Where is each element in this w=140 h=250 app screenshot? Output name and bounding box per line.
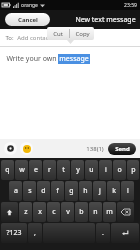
staticText bbox=[68, 228, 70, 238]
staticText: z bbox=[24, 207, 28, 217]
button[interactable]: Cancel bbox=[5, 13, 50, 26]
staticText: e bbox=[34, 165, 38, 175]
button[interactable]: t bbox=[57, 160, 70, 180]
staticText: Write your own bbox=[5, 54, 58, 64]
staticText: n bbox=[93, 207, 98, 217]
button[interactable]: ?123 bbox=[1, 223, 27, 243]
button[interactable]: j bbox=[93, 181, 106, 201]
staticText: k bbox=[112, 186, 116, 196]
button[interactable]: l bbox=[121, 181, 134, 201]
button[interactable]: v bbox=[61, 202, 74, 222]
staticText: c bbox=[52, 207, 56, 217]
button[interactable]: Backspace bbox=[117, 202, 134, 222]
button[interactable]: u bbox=[85, 160, 98, 180]
staticText: w bbox=[19, 165, 25, 175]
button[interactable]: . bbox=[96, 223, 110, 243]
staticText: o bbox=[117, 165, 122, 175]
button[interactable]: s bbox=[23, 181, 36, 201]
button[interactable]: h bbox=[79, 181, 92, 201]
button[interactable]: , bbox=[28, 223, 42, 243]
staticText: orange bbox=[21, 2, 38, 9]
button[interactable]: q bbox=[1, 160, 14, 180]
staticText: h bbox=[83, 186, 88, 196]
staticText: r bbox=[48, 165, 51, 175]
button[interactable] bbox=[43, 223, 95, 243]
button[interactable]: Enter bbox=[111, 223, 139, 243]
staticText: message bbox=[59, 54, 89, 64]
staticText: p bbox=[131, 165, 136, 175]
button[interactable]: Shift bbox=[1, 202, 18, 222]
staticText: . bbox=[102, 228, 104, 238]
button[interactable]: p bbox=[127, 160, 139, 180]
staticText: v bbox=[66, 207, 70, 217]
staticText: b bbox=[79, 207, 84, 217]
staticText: Copy bbox=[75, 30, 90, 38]
button[interactable]: k bbox=[107, 181, 120, 201]
button[interactable]: x bbox=[33, 202, 46, 222]
button[interactable]: i bbox=[99, 160, 112, 180]
staticText: To: bbox=[5, 34, 14, 42]
staticText: ?123 bbox=[6, 228, 22, 238]
button[interactable]: c bbox=[47, 202, 60, 222]
button[interactable]: a bbox=[9, 181, 22, 201]
button[interactable]: Cut bbox=[47, 27, 69, 40]
staticText: j bbox=[99, 186, 101, 196]
staticText: a bbox=[14, 186, 18, 196]
staticText: Add contact bbox=[17, 34, 51, 42]
staticText: g bbox=[69, 186, 74, 196]
button[interactable]: m bbox=[103, 202, 116, 222]
button[interactable]: e bbox=[29, 160, 42, 180]
staticText: Send bbox=[115, 145, 130, 153]
staticText: y bbox=[76, 165, 80, 175]
button[interactable]: n bbox=[89, 202, 102, 222]
staticText: 23:59 bbox=[124, 2, 137, 9]
button[interactable]: Copy bbox=[70, 27, 94, 40]
button[interactable]: f bbox=[51, 181, 64, 201]
button[interactable]: y bbox=[71, 160, 84, 180]
button[interactable]: Attach bbox=[4, 142, 17, 155]
staticText: t bbox=[62, 165, 65, 175]
staticText: Cancel bbox=[18, 16, 38, 24]
staticText: , bbox=[34, 228, 36, 238]
button[interactable]: b bbox=[75, 202, 88, 222]
button[interactable]: Emoji bbox=[20, 142, 33, 155]
staticText: i bbox=[105, 165, 107, 175]
button[interactable]: d bbox=[37, 181, 50, 201]
button[interactable]: w bbox=[15, 160, 28, 180]
staticText: l bbox=[127, 186, 129, 196]
button[interactable]: g bbox=[65, 181, 78, 201]
button[interactable]: z bbox=[19, 202, 32, 222]
staticText: x bbox=[38, 207, 42, 217]
staticText: s bbox=[28, 186, 32, 196]
staticText: d bbox=[41, 186, 46, 196]
staticText: f bbox=[56, 186, 59, 196]
button[interactable]: o bbox=[113, 160, 126, 180]
staticText: 138(1) bbox=[86, 145, 104, 153]
button[interactable]: Send bbox=[108, 143, 136, 155]
button[interactable]: r bbox=[43, 160, 56, 180]
staticText: q bbox=[5, 165, 10, 175]
staticText: m bbox=[106, 207, 113, 217]
staticText: u bbox=[89, 165, 94, 175]
staticText: New text message bbox=[75, 15, 136, 25]
staticText: Cut bbox=[53, 30, 63, 38]
